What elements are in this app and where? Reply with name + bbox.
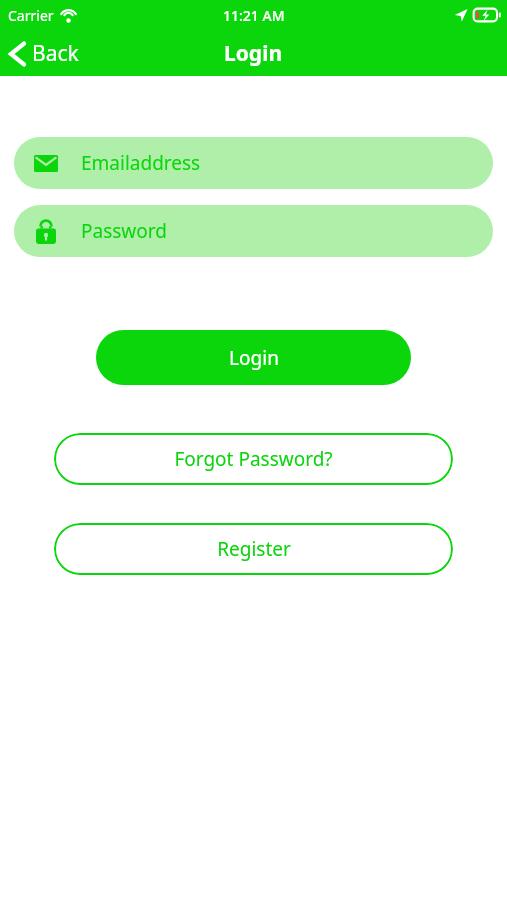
other: Password — [36, 218, 56, 244]
button[interactable]: Forgot Password? — [54, 433, 453, 485]
staticText: Login — [224, 39, 283, 68]
button[interactable]: Back — [0, 35, 89, 72]
other: Email — [34, 155, 58, 172]
staticText: Password — [81, 218, 167, 244]
staticText: Register — [217, 536, 291, 562]
button[interactable]: Password — [14, 205, 493, 257]
staticText: Carrier — [8, 6, 54, 25]
staticText: Login — [229, 345, 279, 371]
staticText: Back — [32, 39, 79, 68]
staticText: Emailaddress — [81, 150, 201, 176]
staticText: 11:21 AM — [223, 6, 285, 25]
button[interactable]: Register — [54, 523, 453, 575]
other: Back — [9, 40, 26, 68]
staticText: Forgot Password? — [174, 446, 333, 472]
button[interactable]: Login — [96, 330, 411, 385]
button[interactable]: Email — [14, 137, 493, 189]
